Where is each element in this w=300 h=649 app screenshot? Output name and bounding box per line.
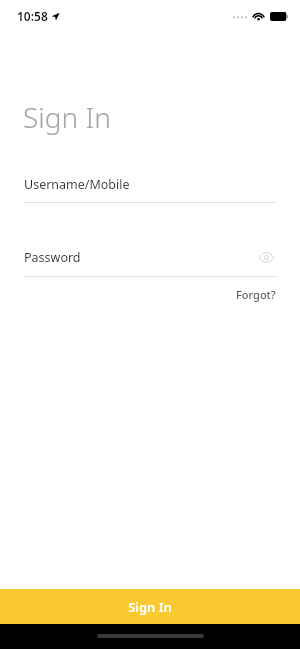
- staticText: Sign In: [128, 598, 172, 616]
- staticText: Forgot?: [236, 287, 276, 302]
- staticText: Password: [24, 249, 81, 266]
- staticText: 10:58: [17, 8, 48, 24]
- staticText: Sign In: [23, 98, 111, 136]
- button[interactable]: Username/Mobile: [0, 176, 300, 203]
- button[interactable]: Password: [0, 247, 300, 277]
- staticText: Username/Mobile: [24, 176, 130, 193]
- button[interactable]: Forgot?: [212, 284, 300, 305]
- button[interactable]: Sign In: [0, 589, 300, 624]
- button[interactable]: Show password: [256, 247, 276, 267]
